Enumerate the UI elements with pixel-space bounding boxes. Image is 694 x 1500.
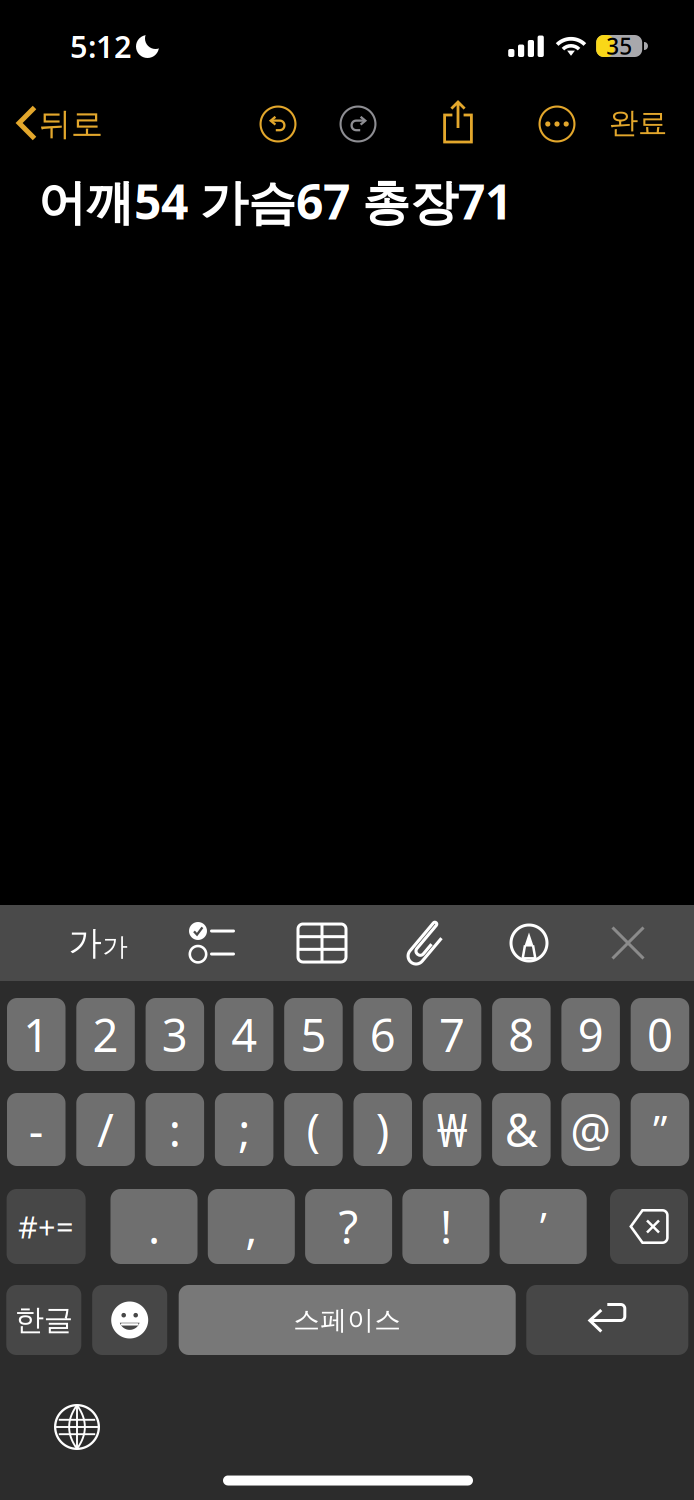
staticText: ? <box>339 1196 359 1257</box>
staticText: - <box>29 1099 44 1160</box>
button[interactable]: 마크업 <box>509 923 548 962</box>
button[interactable]: ) <box>353 1093 412 1166</box>
button[interactable]: & <box>492 1093 551 1166</box>
button[interactable]: 4 <box>215 998 273 1071</box>
button[interactable]: 6 <box>353 998 412 1071</box>
button[interactable]: @ <box>561 1093 620 1166</box>
staticText: 한글 <box>15 1302 73 1338</box>
staticText: 9 <box>578 1004 604 1065</box>
button[interactable]: ? <box>305 1189 392 1264</box>
button[interactable]: 7 <box>423 998 481 1071</box>
button[interactable]: / <box>76 1093 135 1166</box>
staticText: ” <box>653 1103 667 1156</box>
button[interactable]: ₩ <box>423 1093 481 1166</box>
button[interactable]: - <box>7 1093 65 1166</box>
staticText: 0 <box>647 1004 673 1065</box>
staticText: 가 <box>102 931 127 962</box>
staticText: ; <box>238 1099 250 1160</box>
button[interactable]: 체크리스트 <box>189 920 235 966</box>
button[interactable]: 실행 취소 <box>259 105 296 142</box>
button[interactable]: 9 <box>561 998 620 1071</box>
button[interactable]: 공유 <box>441 100 475 144</box>
button[interactable]: 다음 키보드 <box>54 1404 100 1450</box>
button[interactable]: : <box>146 1093 204 1166</box>
staticText: 1 <box>23 1004 49 1065</box>
staticText: . <box>148 1196 160 1257</box>
staticText: 스페이스 <box>293 1304 401 1336</box>
staticText: & <box>505 1099 538 1160</box>
button[interactable]: ’ <box>500 1189 587 1264</box>
button[interactable]: ” <box>631 1093 689 1166</box>
button[interactable]: #+= <box>7 1189 86 1264</box>
button[interactable]: 1 <box>7 998 65 1071</box>
button[interactable]: 표 <box>298 924 346 962</box>
button[interactable]: ! <box>402 1189 489 1264</box>
button[interactable]: 8 <box>492 998 551 1071</box>
button[interactable]: 이모티콘 <box>92 1285 167 1355</box>
staticText: 8 <box>508 1004 534 1065</box>
button[interactable]: 줄바꿈 <box>526 1285 688 1355</box>
button[interactable]: ( <box>284 1093 343 1166</box>
staticText: 6 <box>370 1004 396 1065</box>
staticText: ₩ <box>437 1099 467 1160</box>
staticText: 7 <box>439 1004 465 1065</box>
button[interactable]: 3 <box>146 998 204 1071</box>
staticText: 3 <box>162 1004 188 1065</box>
staticText: , <box>245 1196 257 1257</box>
button[interactable]: 5 <box>284 998 343 1071</box>
staticText: 가 <box>68 922 101 963</box>
button[interactable]: 삭제 <box>610 1189 688 1264</box>
button[interactable]: 가 <box>43 910 153 976</box>
button[interactable]: 0 <box>631 998 689 1071</box>
button[interactable]: 다시 실행 <box>339 105 376 142</box>
staticText: ! <box>440 1196 452 1257</box>
button[interactable]: 닫기 <box>610 925 646 961</box>
button[interactable]: 2 <box>76 998 135 1071</box>
button[interactable]: , <box>208 1189 295 1264</box>
button[interactable]: . <box>110 1189 197 1264</box>
staticText: 2 <box>92 1004 118 1065</box>
staticText: 어깨54 가슴67 총장71 <box>38 169 512 233</box>
button[interactable]: 완료 <box>600 95 676 151</box>
staticText: : <box>169 1099 181 1160</box>
staticText: #+= <box>18 1206 74 1247</box>
staticText: 뒤로 <box>39 104 103 144</box>
button[interactable]: ; <box>215 1093 273 1166</box>
staticText: 4 <box>231 1004 257 1065</box>
staticText: ) <box>376 1099 390 1160</box>
button[interactable]: 더 보기 <box>538 105 575 142</box>
button[interactable]: 한글 <box>6 1285 81 1355</box>
staticText: 35 <box>606 31 632 61</box>
button[interactable]: 뒤로 <box>14 95 110 151</box>
staticText: ’ <box>540 1200 547 1253</box>
staticText: 5 <box>300 1004 326 1065</box>
staticText: @ <box>570 1099 611 1160</box>
staticText: 완료 <box>609 105 667 141</box>
staticText: ( <box>306 1099 320 1160</box>
button[interactable]: 스페이스 <box>179 1285 516 1355</box>
staticText: 5:12 <box>70 26 132 66</box>
staticText: / <box>97 1099 114 1160</box>
button[interactable]: 첨부 <box>404 919 450 967</box>
